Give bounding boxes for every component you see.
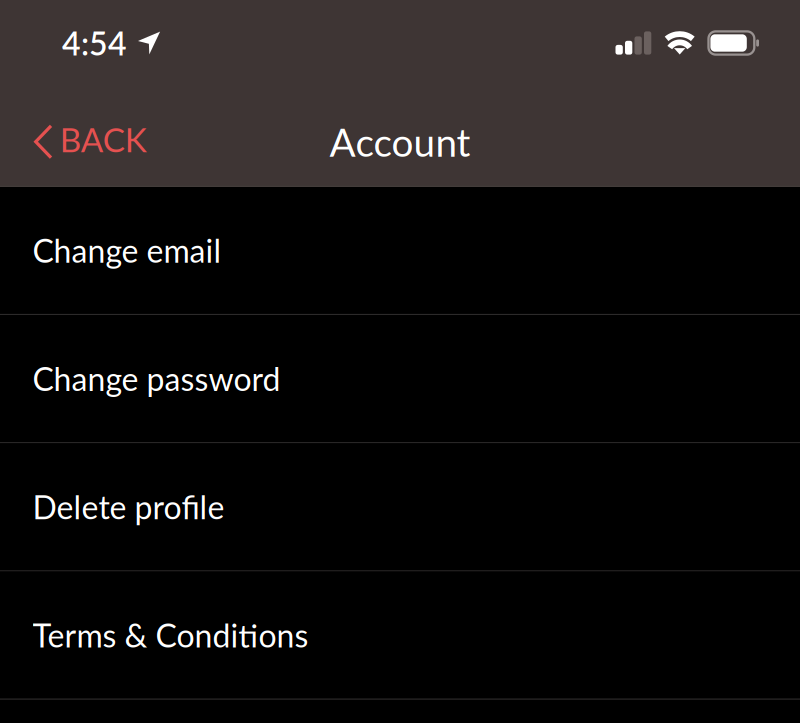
- staticText: 4:54: [62, 24, 127, 62]
- button[interactable]: Delete profile: [0, 443, 800, 570]
- button[interactable]: BACK: [0, 106, 165, 177]
- button[interactable]: Terms & Conditions: [0, 571, 800, 698]
- staticText: Account: [329, 118, 470, 165]
- staticText: Terms & Conditions: [32, 616, 308, 654]
- button[interactable]: Change password: [0, 315, 800, 442]
- staticText: BACK: [60, 119, 147, 159]
- staticText: Change email: [32, 231, 221, 270]
- staticText: Change password: [32, 359, 280, 398]
- staticText: Delete profile: [32, 488, 224, 526]
- button[interactable]: Change email: [0, 187, 800, 314]
